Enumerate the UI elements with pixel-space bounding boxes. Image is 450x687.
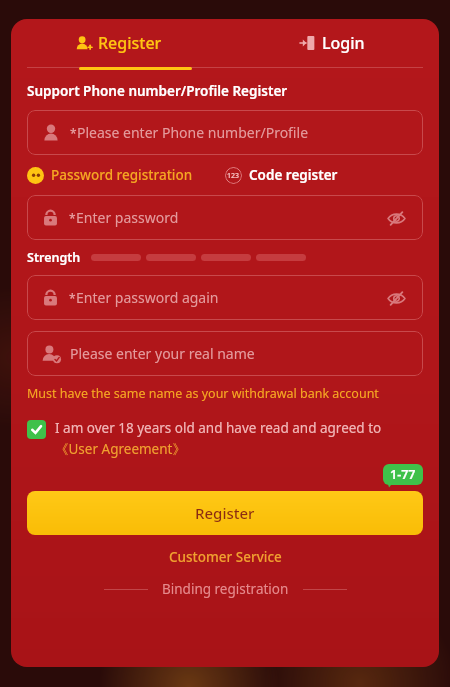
- staticText: Customer Service: [169, 548, 282, 566]
- button[interactable]: *: [27, 275, 423, 320]
- staticText: Register: [195, 503, 255, 523]
- staticText: Please enter your real name: [70, 344, 255, 363]
- staticText: Register: [98, 32, 162, 54]
- button[interactable]: Please enter your real name: [27, 331, 423, 376]
- staticText: Please enter Phone number/Profile: [77, 123, 309, 142]
- staticText: Support Phone number/Profile Register: [27, 82, 288, 100]
- staticText: Binding registration: [162, 580, 289, 598]
- staticText: I am over 18 years old and have read and…: [55, 419, 423, 458]
- button[interactable]: Customer Service: [27, 548, 423, 566]
- button[interactable]: Agree to terms checkbox: [27, 420, 46, 439]
- staticText: 123: [227, 171, 240, 181]
- button[interactable]: 123: [225, 166, 338, 184]
- button[interactable]: Binding registration: [27, 580, 423, 598]
- staticText: Must have the same name as your withdraw…: [27, 385, 379, 402]
- staticText: *: [69, 210, 76, 226]
- button[interactable]: 1-77: [383, 464, 423, 485]
- button[interactable]: Show password: [383, 205, 409, 231]
- staticText: Strength: [27, 249, 81, 266]
- staticText: Enter password again: [76, 288, 219, 307]
- staticText: Password registration: [51, 166, 193, 184]
- button[interactable]: *: [27, 195, 423, 240]
- button[interactable]: *: [27, 110, 423, 155]
- button[interactable]: Show password: [383, 285, 409, 311]
- staticText: 1-77: [390, 466, 416, 483]
- staticText: Code register: [249, 166, 338, 184]
- button[interactable]: Register: [27, 491, 423, 535]
- button[interactable]: Password registration: [27, 166, 193, 184]
- button[interactable]: Login: [225, 19, 439, 67]
- staticText: Login: [322, 32, 365, 54]
- staticText: Enter password: [76, 208, 179, 227]
- staticText: *: [70, 125, 77, 141]
- staticText: *: [69, 290, 76, 306]
- button[interactable]: Register: [11, 19, 225, 67]
